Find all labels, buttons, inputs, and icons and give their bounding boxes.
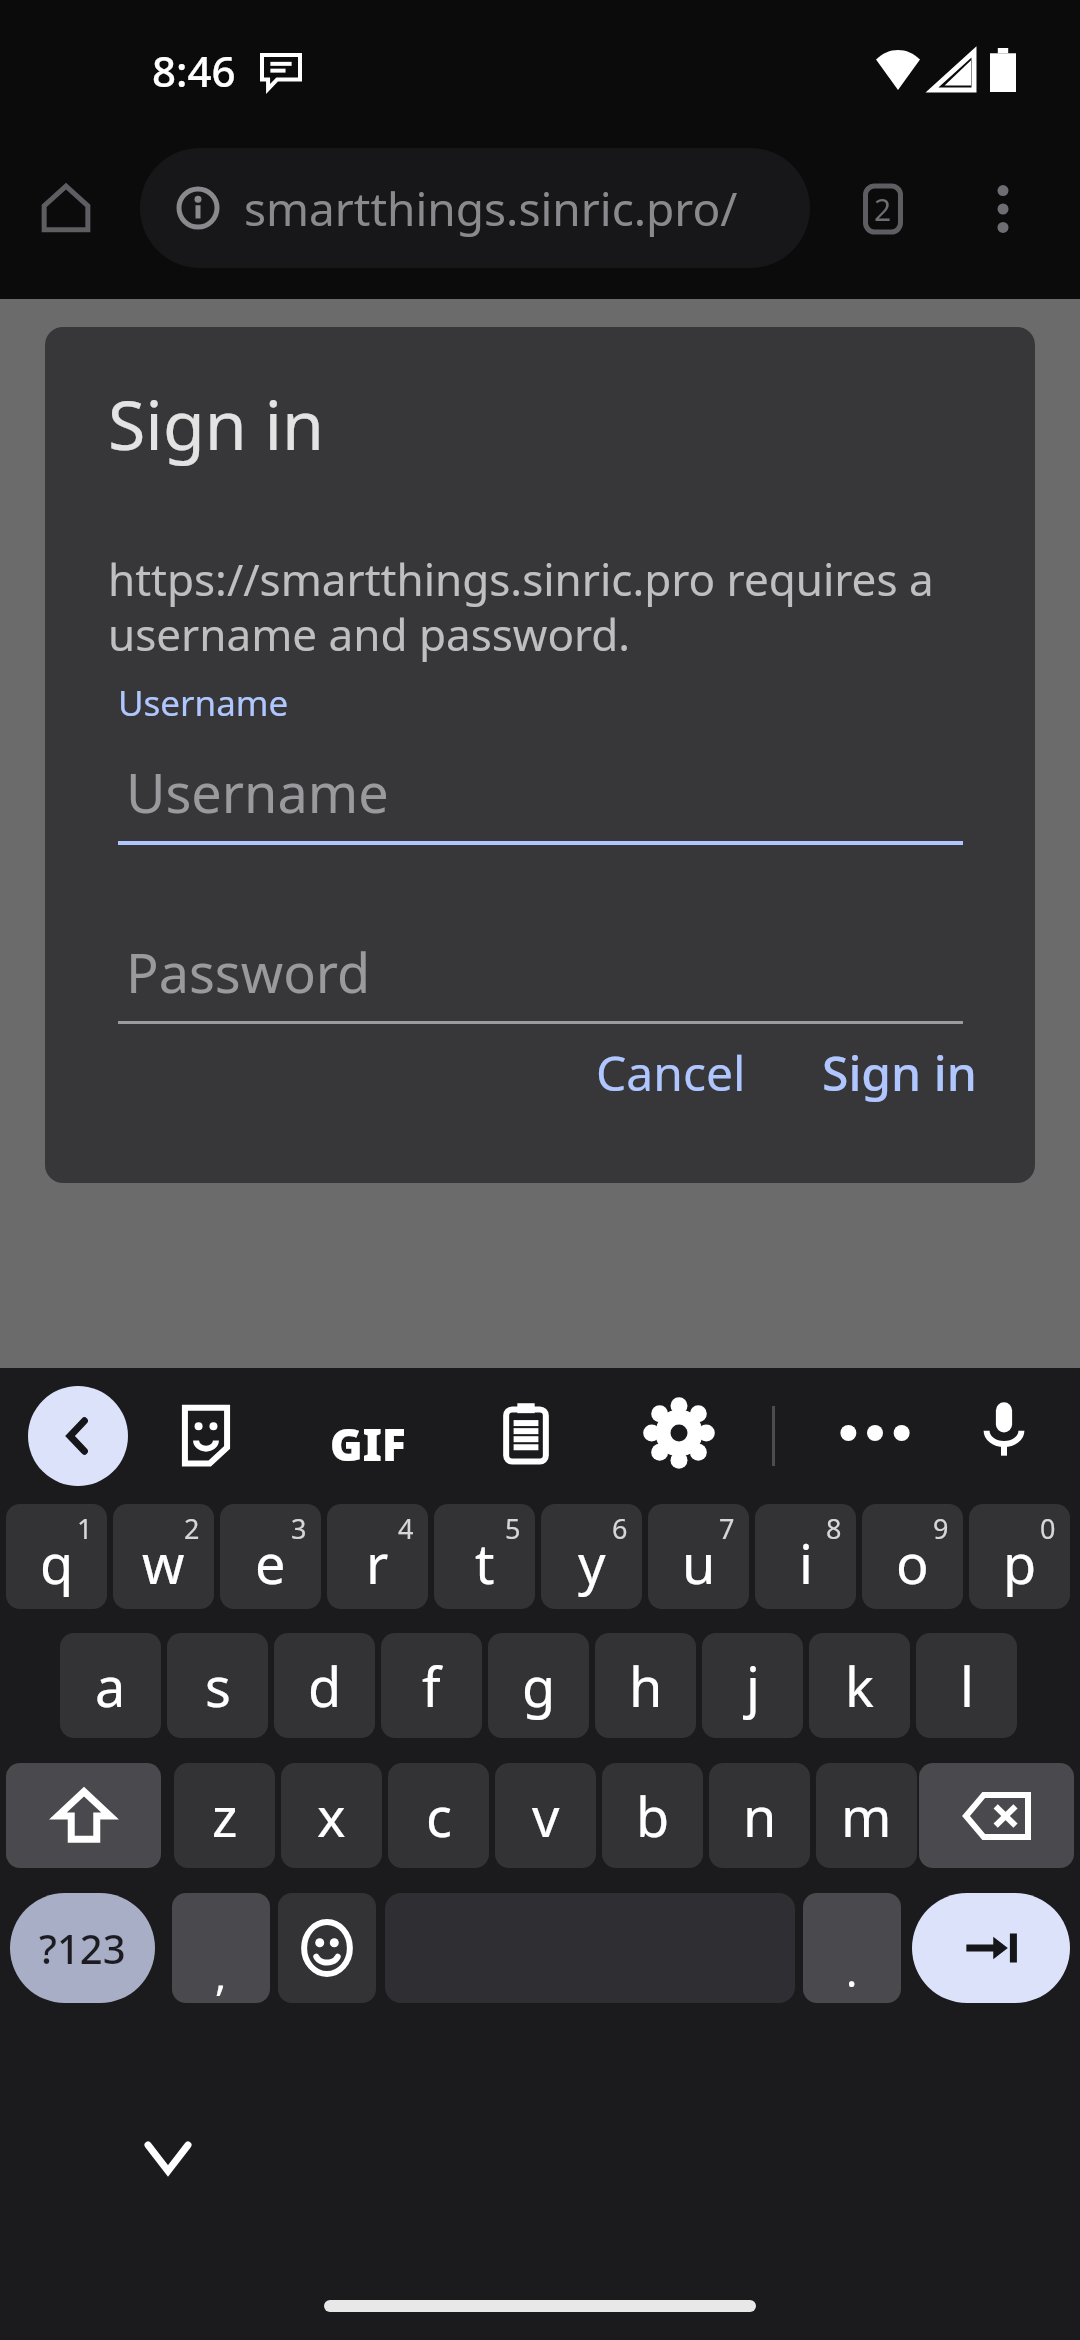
button[interactable]: d [274, 1633, 375, 1738]
button[interactable]: Home [40, 182, 92, 234]
staticText: 3 [291, 1510, 307, 1547]
button[interactable]: h [595, 1633, 696, 1738]
staticText: Sign in [822, 1040, 977, 1105]
button[interactable]: Stickers [175, 1404, 237, 1466]
button[interactable]: , [172, 1893, 270, 2003]
staticText: m [841, 1779, 892, 1853]
staticText: t [475, 1526, 495, 1600]
staticText: Sign in [108, 377, 324, 470]
button[interactable]: Clipboard [495, 1402, 557, 1464]
staticText: Username [118, 679, 289, 727]
button[interactable]: x [281, 1763, 382, 1868]
staticText: Username [126, 755, 389, 829]
button[interactable]: t [434, 1504, 535, 1609]
staticText: q [40, 1526, 74, 1600]
button[interactable]: GIF [330, 1414, 406, 1474]
staticText: d [308, 1649, 342, 1723]
button[interactable]: r [327, 1504, 428, 1609]
staticText: n [743, 1779, 777, 1853]
button[interactable]: c [388, 1763, 489, 1868]
staticText: j [746, 1649, 760, 1723]
button[interactable]: e [220, 1504, 321, 1609]
staticText: l [960, 1649, 974, 1723]
button[interactable]: q [6, 1504, 107, 1609]
button[interactable]: p [969, 1504, 1070, 1609]
staticText: a [95, 1649, 126, 1723]
button[interactable]: i [755, 1504, 856, 1609]
staticText: e [255, 1526, 286, 1600]
button[interactable]: Voice input [975, 1400, 1033, 1458]
staticText: 4 [398, 1510, 414, 1547]
button[interactable]: Shift [6, 1763, 161, 1868]
staticText: g [522, 1649, 556, 1723]
button[interactable]: j [702, 1633, 803, 1738]
staticText: x [317, 1779, 346, 1853]
staticText: https://smartthings.sinric.pro requires … [108, 549, 978, 664]
staticText: Cancel [596, 1040, 746, 1105]
staticText: r [366, 1526, 389, 1600]
button[interactable]: Enter [912, 1893, 1070, 2003]
staticText: . [846, 1942, 858, 1999]
staticText: s [205, 1649, 231, 1723]
button[interactable]: v [495, 1763, 596, 1868]
staticText: w [142, 1526, 185, 1600]
button[interactable]: f [381, 1633, 482, 1738]
staticText: ?123 [39, 1921, 126, 1975]
button[interactable]: Back [28, 1386, 128, 1486]
staticText: c [426, 1779, 452, 1853]
button[interactable]: l [916, 1633, 1017, 1738]
button[interactable]: n [709, 1763, 810, 1868]
button[interactable]: b [602, 1763, 703, 1868]
button[interactable]: Cancel [570, 1022, 772, 1123]
button[interactable]: o [862, 1504, 963, 1609]
button[interactable]: Sign in [796, 1022, 1003, 1123]
staticText: 7 [719, 1510, 735, 1547]
button[interactable]: ?123 [10, 1893, 155, 2003]
staticText: 2 [874, 189, 892, 230]
button[interactable]: y [541, 1504, 642, 1609]
button[interactable]: a [60, 1633, 161, 1738]
staticText: u [682, 1526, 716, 1600]
button[interactable]: More [838, 1418, 912, 1448]
button[interactable]: More options [972, 178, 1034, 240]
button[interactable]: Emoji [278, 1893, 376, 2003]
button[interactable]: m [816, 1763, 917, 1868]
button[interactable]: Hide keyboard [128, 2118, 208, 2198]
button[interactable]: w [113, 1504, 214, 1609]
staticText: k [845, 1649, 874, 1723]
staticText: Password [126, 935, 371, 1009]
button[interactable]: Settings [648, 1402, 710, 1464]
staticText: , [215, 1946, 227, 2003]
staticText: h [629, 1649, 663, 1723]
button[interactable]: smartthings.sinric.pro/ [140, 148, 810, 268]
button[interactable]: Tabs [852, 178, 914, 240]
staticText: z [212, 1779, 238, 1853]
button[interactable]: Password [118, 907, 963, 1025]
staticText: v [532, 1779, 560, 1853]
staticText: 9 [933, 1510, 949, 1547]
button[interactable]: s [167, 1633, 268, 1738]
button[interactable]: k [809, 1633, 910, 1738]
button[interactable]: u [648, 1504, 749, 1609]
button[interactable]: g [488, 1633, 589, 1738]
staticText: 2 [184, 1510, 200, 1547]
button[interactable]: . [803, 1893, 901, 2003]
button[interactable]: Username [118, 727, 963, 845]
staticText: 1 [77, 1510, 93, 1547]
button[interactable]: z [174, 1763, 275, 1868]
staticText: f [422, 1649, 441, 1723]
staticText: y [578, 1526, 606, 1600]
staticText: 8:46 [152, 42, 236, 99]
staticText: o [896, 1526, 929, 1600]
staticText: b [636, 1779, 670, 1853]
staticText: p [1003, 1526, 1037, 1600]
staticText: i [799, 1526, 813, 1600]
staticText: 8 [826, 1510, 842, 1547]
staticText: 6 [612, 1510, 628, 1547]
button[interactable]: Backspace [919, 1763, 1074, 1868]
staticText: 5 [505, 1510, 521, 1547]
staticText: 0 [1040, 1510, 1056, 1547]
staticText: smartthings.sinric.pro/ [244, 177, 738, 240]
